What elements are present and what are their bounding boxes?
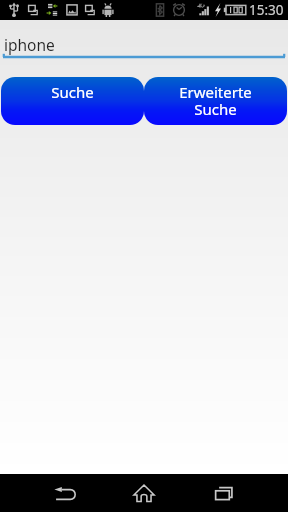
button[interactable]: Recent apps: [204, 474, 244, 512]
staticText: Suche: [51, 82, 94, 102]
staticText: Erweiterte Suche: [179, 82, 252, 120]
button[interactable]: iphone: [0, 20, 288, 58]
staticText: 15:30: [249, 1, 284, 19]
staticText: iphone: [4, 34, 55, 55]
button[interactable]: Suche: [1, 77, 144, 125]
button[interactable]: Back: [44, 474, 84, 512]
button[interactable]: Erweiterte Suche: [144, 77, 287, 125]
button[interactable]: Home: [124, 474, 164, 512]
